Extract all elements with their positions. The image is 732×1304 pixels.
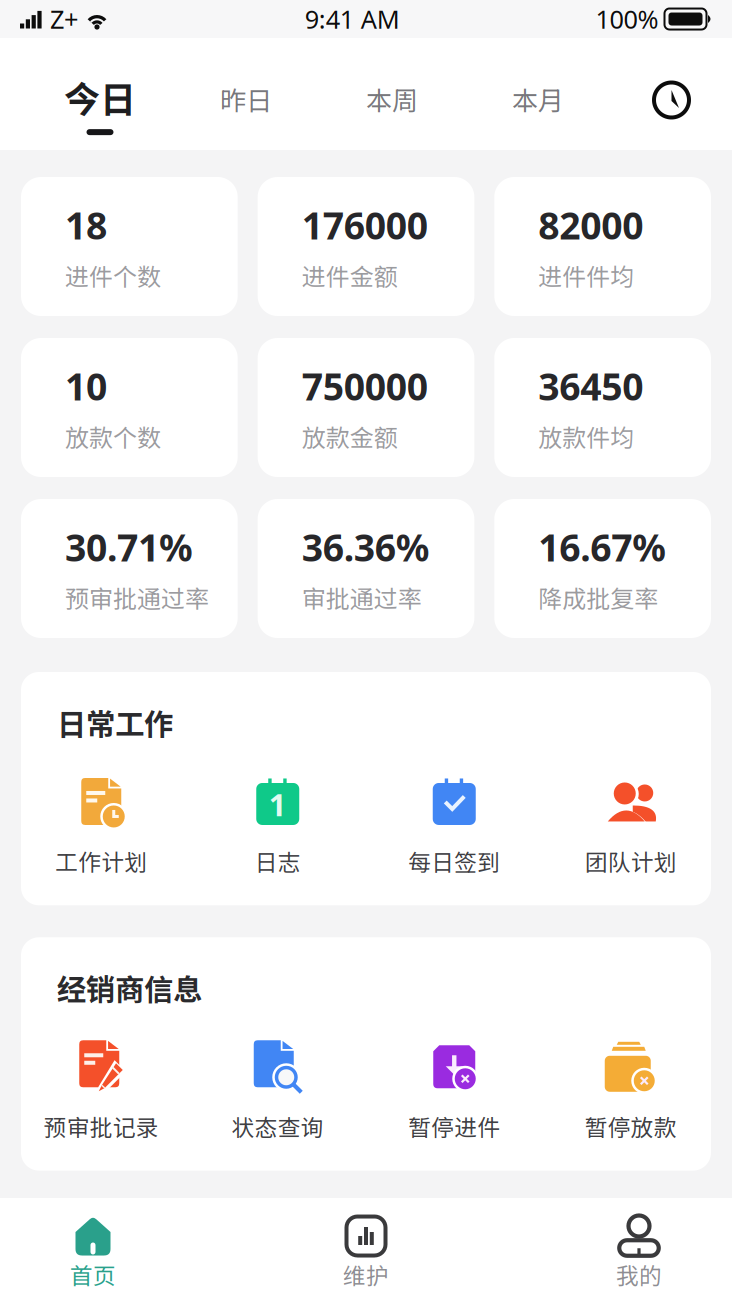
- button[interactable]: 维护: [301, 1216, 431, 1291]
- staticText: 36.36%: [302, 522, 430, 572]
- staticText: 状态查询: [232, 1110, 324, 1143]
- staticText: 176000: [302, 200, 428, 250]
- staticText: Z+: [50, 2, 78, 36]
- staticText: 放款金额: [302, 419, 398, 454]
- staticText: 本周: [366, 80, 418, 118]
- button[interactable]: 暂停进件: [366, 1042, 542, 1143]
- staticText: 进件件均: [538, 258, 634, 293]
- button[interactable]: 状态查询: [189, 1042, 366, 1143]
- staticText: 昨日: [220, 80, 272, 118]
- button[interactable]: 首页: [28, 1216, 158, 1291]
- staticText: 预审批记录: [44, 1110, 159, 1143]
- staticText: 放款个数: [65, 419, 161, 454]
- button[interactable]: 预审批记录: [13, 1042, 189, 1143]
- staticText: 预审批通过率: [65, 580, 209, 615]
- staticText: 我的: [616, 1258, 662, 1291]
- staticText: 100%: [595, 2, 658, 36]
- button[interactable]: 本月: [465, 38, 611, 150]
- staticText: 暂停进件: [408, 1110, 500, 1143]
- staticText: 审批通过率: [302, 580, 422, 615]
- button[interactable]: 1: [189, 776, 366, 877]
- staticText: 降成批复率: [538, 580, 658, 615]
- staticText: 团队计划: [585, 844, 677, 877]
- button[interactable]: 本周: [319, 38, 465, 150]
- button[interactable]: 昨日: [173, 38, 319, 150]
- staticText: 今日: [64, 71, 136, 123]
- staticText: 30.71%: [65, 522, 193, 572]
- button[interactable]: 工作计划: [13, 776, 189, 877]
- staticText: 36450: [538, 361, 643, 411]
- staticText: 日志: [255, 844, 301, 877]
- button[interactable]: 团队计划: [542, 776, 719, 877]
- staticText: 维护: [343, 1258, 389, 1291]
- staticText: 进件金额: [302, 258, 398, 293]
- staticText: 每日签到: [408, 844, 500, 877]
- staticText: 进件个数: [65, 258, 161, 293]
- button[interactable]: 今日: [27, 38, 173, 150]
- button[interactable]: 暂停放款: [542, 1042, 719, 1143]
- staticText: 750000: [302, 361, 428, 411]
- staticText: 日常工作: [57, 701, 173, 743]
- staticText: 10: [65, 361, 107, 411]
- staticText: 82000: [538, 200, 643, 250]
- button[interactable]: 历史记录: [611, 38, 732, 150]
- staticText: 放款件均: [538, 419, 634, 454]
- staticText: 首页: [70, 1258, 116, 1291]
- staticText: 工作计划: [55, 844, 147, 877]
- staticText: 16.67%: [538, 522, 666, 572]
- button[interactable]: 每日签到: [366, 776, 542, 877]
- staticText: 9:41 AM: [305, 2, 400, 36]
- staticText: 暂停放款: [585, 1110, 677, 1143]
- staticText: 本月: [512, 80, 564, 118]
- button[interactable]: 我的: [574, 1216, 704, 1291]
- staticText: 1: [269, 784, 287, 825]
- staticText: 18: [65, 200, 107, 250]
- staticText: 经销商信息: [57, 966, 202, 1009]
